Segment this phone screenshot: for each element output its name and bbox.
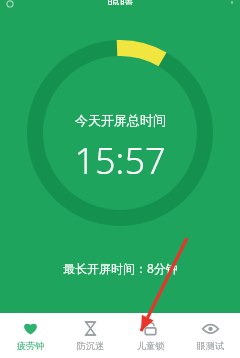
- button[interactable]: 疲劳钟: [0, 313, 60, 358]
- staticText: 疲劳钟: [17, 340, 44, 351]
- staticText: 最长开屏时间：8分钟: [63, 260, 178, 276]
- button[interactable]: 防沉迷: [60, 313, 120, 358]
- staticText: 防沉迷: [77, 340, 104, 351]
- staticText: 儿童锁: [137, 340, 164, 351]
- button[interactable]: 眼测试: [180, 313, 240, 358]
- staticText: 今天开屏总时间: [75, 112, 166, 128]
- staticText: 眼测试: [197, 340, 224, 351]
- staticText: 15:57: [74, 136, 166, 185]
- button[interactable]: 儿童锁: [120, 313, 180, 358]
- staticText: 眼睛: [107, 0, 133, 5]
